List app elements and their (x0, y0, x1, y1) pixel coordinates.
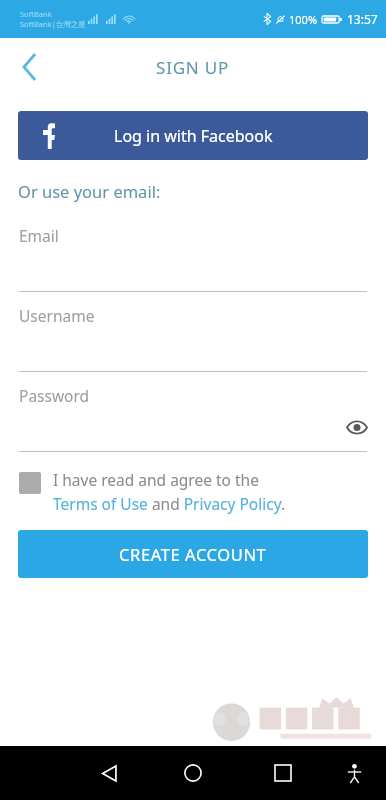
button[interactable]: Back (8, 45, 52, 89)
button[interactable]: I have read and agree to the (19, 469, 367, 514)
button[interactable]: CREATE ACCOUNT (18, 530, 368, 578)
button[interactable]: Back (88, 752, 130, 794)
staticText: 100% (289, 12, 318, 27)
staticText: Terms of Use and Privacy Policy. (53, 493, 286, 514)
staticText: SoftBank (20, 9, 52, 19)
staticText: Password (19, 385, 90, 406)
button[interactable]: Accessibility (336, 755, 372, 791)
button[interactable]: Password (0, 378, 386, 458)
staticText: Username (19, 305, 95, 326)
staticText: Or use your email: (18, 180, 161, 202)
button[interactable]: Recent apps (262, 752, 304, 794)
staticText: SoftBank|台灣之星 (20, 19, 86, 29)
button[interactable]: Log in with Facebook (18, 111, 368, 160)
staticText: Log in with Facebook (114, 125, 273, 147)
button[interactable]: Username (0, 298, 386, 378)
staticText: SIGN UP (156, 56, 230, 79)
staticText: CREATE ACCOUNT (119, 543, 267, 565)
staticText: I have read and agree to the (53, 469, 259, 490)
button[interactable]: Email (0, 218, 386, 298)
button[interactable]: Home (172, 752, 214, 794)
staticText: Email (19, 225, 59, 246)
staticText: 13:57 (347, 11, 378, 27)
button[interactable]: Show password (340, 410, 374, 444)
